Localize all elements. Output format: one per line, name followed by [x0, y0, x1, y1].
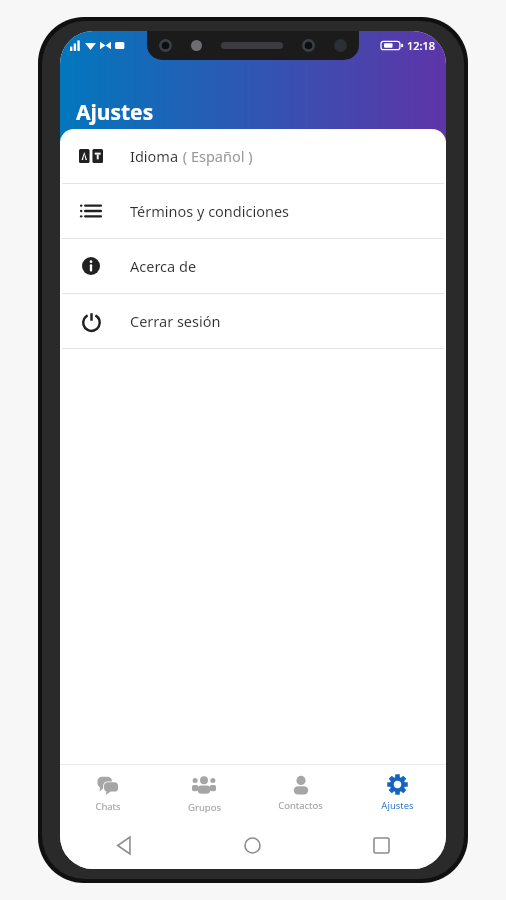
button[interactable]: Cerrar sesión — [60, 294, 446, 348]
staticText: Chats — [95, 800, 121, 813]
button[interactable]: Home — [188, 821, 317, 869]
staticText: ( Español ) — [179, 146, 253, 166]
staticText: 12:18 — [407, 38, 436, 53]
button[interactable]: Grupos — [156, 765, 252, 821]
button[interactable]: Chats — [60, 765, 156, 821]
button[interactable]: Acerca de — [60, 239, 446, 293]
button[interactable]: Recent apps — [317, 821, 446, 869]
staticText: Ajustes — [381, 799, 414, 812]
button[interactable]: Back — [60, 821, 188, 869]
button[interactable]: Idioma — [60, 129, 446, 183]
button[interactable]: Contactos — [252, 765, 349, 821]
staticText: Cerrar sesión — [130, 311, 221, 331]
staticText: Grupos — [188, 801, 221, 814]
staticText: Acerca de — [130, 256, 197, 276]
staticText: Ajustes — [76, 98, 154, 127]
staticText: Contactos — [278, 799, 323, 812]
staticText: Idioma — [130, 146, 179, 166]
staticText: Términos y condiciones — [130, 201, 290, 221]
button[interactable]: Términos y condiciones — [60, 184, 446, 238]
button[interactable]: Ajustes — [349, 765, 446, 821]
